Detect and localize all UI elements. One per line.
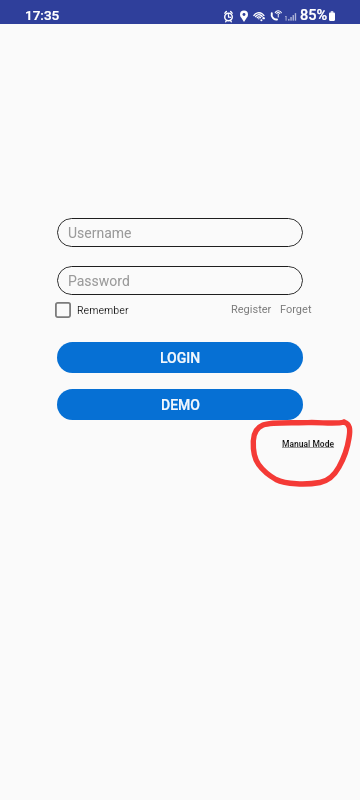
staticText: 17:35 [25, 7, 60, 23]
staticText: Manual Mode [282, 439, 335, 449]
staticText: Register [231, 303, 272, 316]
staticText: Password [68, 273, 130, 289]
staticText: DEMO [161, 397, 200, 413]
staticText: Forget [280, 303, 312, 316]
button[interactable]: Password [57, 266, 303, 295]
button[interactable]: Manual Mode [280, 436, 337, 452]
staticText: Remember [77, 304, 129, 316]
button[interactable]: Username [57, 218, 303, 247]
button[interactable]: DEMO [57, 389, 303, 420]
staticText: LOGIN [160, 350, 201, 366]
staticText: 85% [300, 7, 328, 24]
other: Red ink circle highlighting Manual Mode [248, 416, 356, 490]
staticText: Username [68, 225, 132, 241]
button[interactable]: LOGIN [57, 342, 303, 373]
button[interactable]: Register [231, 303, 272, 316]
button[interactable]: Remember [55, 302, 129, 318]
button[interactable]: Forget [280, 303, 312, 316]
